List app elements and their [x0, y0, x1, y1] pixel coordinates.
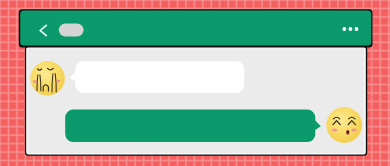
button[interactable]: Outgoing message — [65, 109, 321, 142]
button[interactable]: Conversation title — [56, 20, 86, 40]
button[interactable]: More options — [336, 18, 366, 42]
button[interactable]: Sender avatar, crying face — [30, 61, 65, 96]
button[interactable]: Your avatar, kissing face — [326, 107, 362, 143]
button[interactable]: Back — [34, 18, 59, 43]
button[interactable]: Incoming message — [69, 61, 245, 93]
